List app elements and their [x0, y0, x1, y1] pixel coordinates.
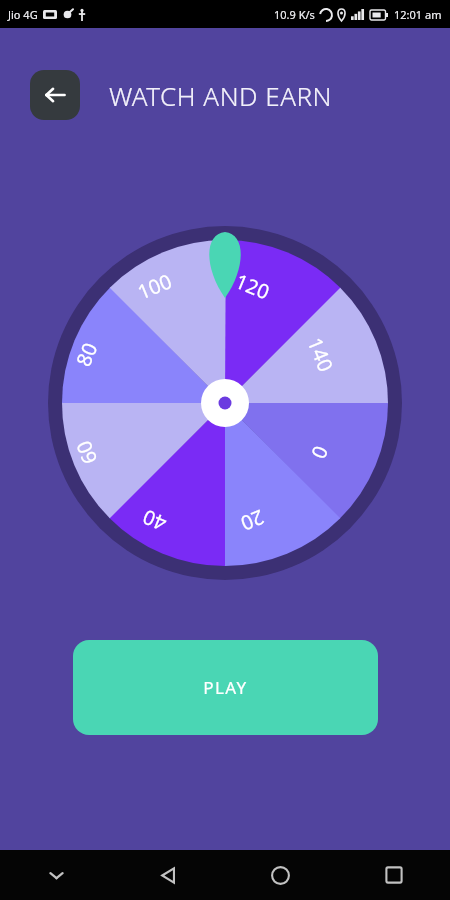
staticText: 140	[301, 333, 340, 376]
button[interactable]: PLAY	[73, 640, 378, 735]
staticText: Jio 4G	[8, 7, 38, 22]
staticText: 12:01 am	[394, 7, 442, 22]
staticText: 40	[139, 504, 170, 537]
button[interactable]: Back	[112, 850, 224, 900]
staticText: 10.9 K/s	[274, 7, 315, 22]
staticText: 20	[237, 504, 268, 537]
staticText: WATCH AND EARN	[109, 78, 333, 113]
staticText: PLAY	[203, 676, 248, 699]
staticText: 100	[133, 267, 176, 306]
button[interactable]: Recents	[337, 850, 450, 900]
staticText: 0	[305, 442, 335, 463]
staticText: 120	[231, 267, 274, 306]
button[interactable]: Hide keyboard	[0, 850, 112, 900]
staticText: 80	[70, 339, 103, 370]
button[interactable]: Back	[30, 70, 80, 120]
button[interactable]: Spin wheel	[45, 208, 405, 580]
button[interactable]: Home	[224, 850, 337, 900]
staticText: 60	[70, 437, 103, 468]
